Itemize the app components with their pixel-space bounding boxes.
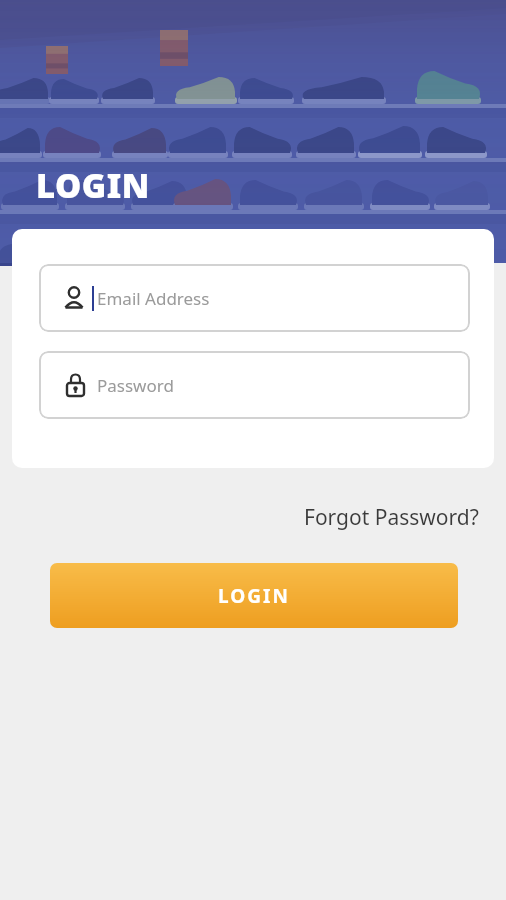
button[interactable]: Forgot Password? [304,503,479,532]
staticText: Email Address [97,287,210,310]
button[interactable]: LOGIN [50,563,458,628]
staticText: Password [97,374,174,397]
staticText: LOGIN [218,583,290,609]
button[interactable]: Email Address [39,264,470,332]
staticText: LOGIN [36,163,150,208]
button[interactable]: Password [39,351,470,419]
